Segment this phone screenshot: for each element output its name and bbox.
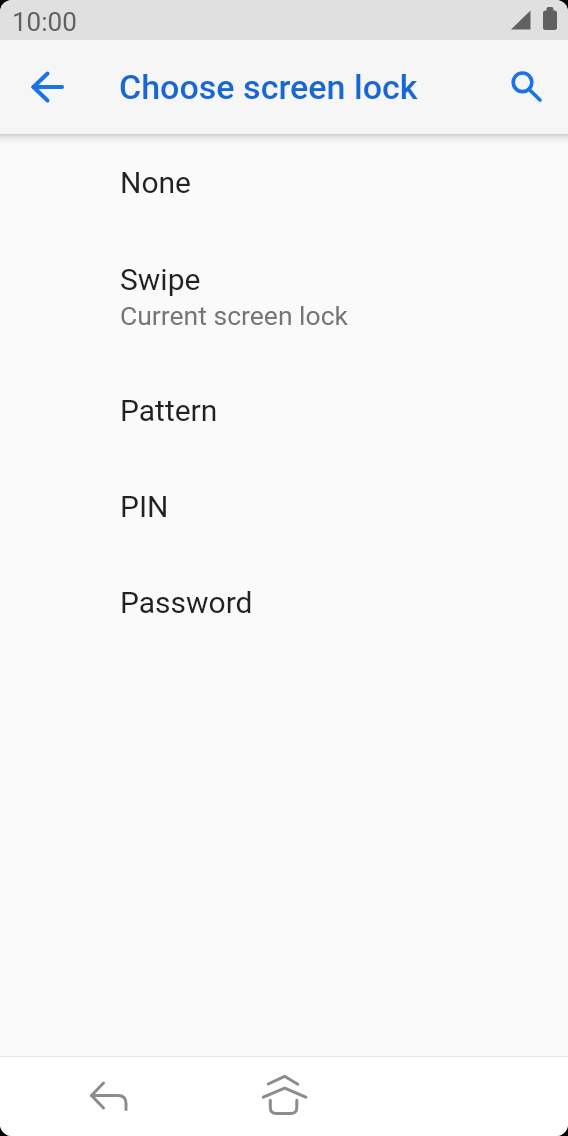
staticText: 10:00 (12, 7, 77, 37)
staticText: Current screen lock (120, 300, 348, 331)
staticText: None (120, 165, 191, 200)
staticText: Choose screen lock (119, 67, 418, 107)
button[interactable] (502, 63, 550, 111)
button[interactable]: Pattern (0, 362, 568, 458)
button[interactable] (24, 63, 72, 111)
staticText: Swipe (120, 262, 201, 297)
button[interactable]: Swipe (0, 230, 568, 362)
staticText: Password (120, 585, 253, 620)
button[interactable] (85, 1073, 133, 1121)
staticText: PIN (120, 489, 169, 524)
button[interactable]: Password (0, 554, 568, 650)
button[interactable] (260, 1073, 308, 1121)
button[interactable]: None (0, 134, 568, 230)
staticText: Pattern (120, 393, 218, 428)
button[interactable]: PIN (0, 458, 568, 554)
